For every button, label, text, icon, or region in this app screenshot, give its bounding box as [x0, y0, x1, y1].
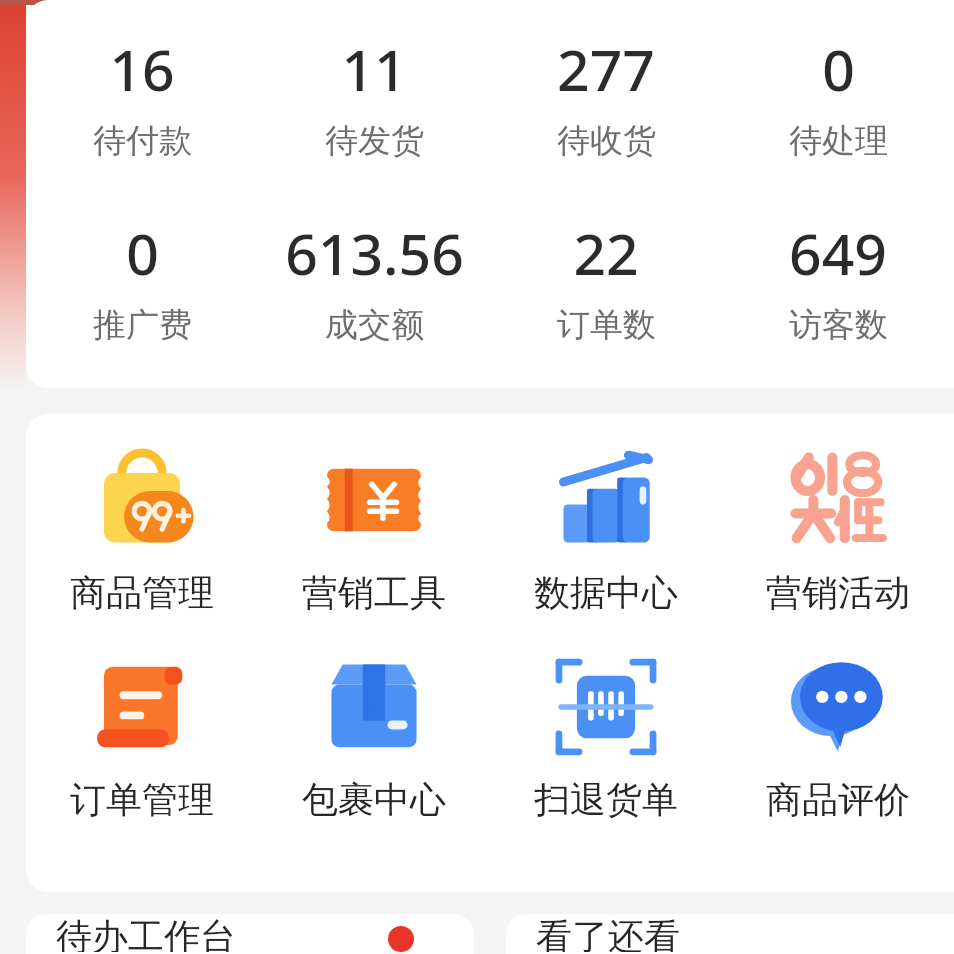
staticText: 商品评价: [766, 777, 910, 822]
button[interactable]: 649: [722, 214, 954, 346]
staticText: 营销工具: [302, 570, 446, 615]
button[interactable]: 数据中心: [490, 444, 722, 615]
button[interactable]: 营销活动: [722, 444, 954, 615]
button[interactable]: 扫退货单: [490, 651, 722, 822]
staticText: 包裹中心: [302, 777, 446, 822]
staticText: 访客数: [789, 304, 888, 346]
button[interactable]: 0: [722, 30, 954, 162]
staticText: 22: [573, 214, 639, 292]
staticText: 订单管理: [70, 777, 214, 822]
staticText: 商品管理: [70, 570, 214, 615]
staticText: 277: [557, 30, 655, 108]
button[interactable]: 商品管理: [26, 444, 258, 615]
button[interactable]: 订单管理: [26, 651, 258, 822]
button[interactable]: 0: [26, 214, 258, 346]
staticText: 0: [822, 30, 855, 108]
staticText: 数据中心: [534, 570, 678, 615]
button[interactable]: 看了还看: [506, 914, 954, 954]
staticText: 成交额: [325, 304, 424, 346]
button[interactable]: 613.56: [258, 214, 490, 346]
button[interactable]: 包裹中心: [258, 651, 490, 822]
staticText: 待付款: [93, 120, 192, 162]
staticText: 推广费: [93, 304, 192, 346]
staticText: 待处理: [789, 120, 888, 162]
staticText: 待办工作台: [56, 914, 236, 952]
staticText: 看了还看: [536, 914, 680, 952]
staticText: 扫退货单: [534, 777, 678, 822]
button[interactable]: 待办工作台: [26, 914, 474, 954]
button[interactable]: 商品评价: [722, 651, 954, 822]
staticText: 订单数: [557, 304, 656, 346]
button[interactable]: 营销工具: [258, 444, 490, 615]
staticText: 613.56: [285, 214, 464, 292]
button[interactable]: 11: [258, 30, 490, 162]
staticText: 16: [109, 30, 175, 108]
button[interactable]: 16: [26, 30, 258, 162]
staticText: 649: [789, 214, 887, 292]
staticText: 待发货: [325, 120, 424, 162]
button[interactable]: 22: [490, 214, 722, 346]
staticText: 11: [341, 30, 407, 108]
button[interactable]: 277: [490, 30, 722, 162]
staticText: 待收货: [557, 120, 656, 162]
staticText: 0: [126, 214, 159, 292]
staticText: 营销活动: [766, 570, 910, 615]
